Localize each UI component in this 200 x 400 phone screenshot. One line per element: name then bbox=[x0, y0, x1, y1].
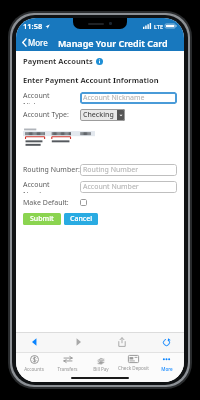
button[interactable]: Transfers bbox=[51, 352, 84, 374]
button[interactable]: Forward bbox=[70, 334, 86, 350]
button[interactable]: Submit bbox=[23, 213, 61, 225]
button[interactable]: Cancel bbox=[64, 213, 98, 225]
button[interactable]: Share bbox=[114, 334, 130, 350]
button[interactable]: Routing Number bbox=[80, 164, 177, 176]
staticText: Accounts bbox=[24, 366, 44, 372]
staticText: Submit bbox=[30, 214, 54, 224]
staticText: Routing Number bbox=[83, 165, 139, 175]
staticText: Bill Pay bbox=[93, 366, 109, 372]
button[interactable]: Check Deposit bbox=[117, 352, 150, 374]
staticText: Account Type: bbox=[23, 110, 80, 120]
staticText: LTE bbox=[154, 23, 163, 30]
button[interactable]: More bbox=[20, 36, 50, 49]
button[interactable]: Make Default checkbox bbox=[80, 199, 87, 206]
staticText: Enter Payment Account Information bbox=[23, 75, 159, 85]
button[interactable]: Back bbox=[26, 334, 42, 350]
button[interactable]: Reload bbox=[158, 334, 174, 350]
button[interactable]: Information bbox=[96, 58, 103, 65]
staticText: Account Nickname bbox=[83, 93, 145, 103]
staticText: Account Number bbox=[83, 182, 139, 192]
staticText: Routing Number: bbox=[23, 165, 80, 175]
button[interactable]: Account Nickname bbox=[80, 92, 177, 104]
staticText: More bbox=[161, 366, 173, 372]
staticText: Cancel bbox=[70, 214, 93, 224]
button[interactable]: More bbox=[150, 352, 183, 374]
button[interactable]: Bill Pay bbox=[84, 352, 117, 374]
staticText: Payment Accounts bbox=[23, 56, 93, 66]
staticText: Make Default: bbox=[23, 198, 80, 208]
staticText: More bbox=[28, 37, 48, 48]
staticText: Manage Your Credit Card bbox=[58, 37, 168, 49]
staticText: Account Number: bbox=[23, 180, 80, 193]
staticText: Checking bbox=[83, 110, 114, 120]
staticText: Transfers bbox=[57, 366, 78, 372]
staticText: 11:58 bbox=[23, 21, 43, 31]
button[interactable]: Account Number bbox=[80, 181, 177, 193]
staticText: Check Deposit bbox=[118, 365, 149, 371]
button[interactable]: Checking bbox=[80, 109, 125, 121]
button[interactable]: Accounts bbox=[17, 352, 51, 374]
staticText: Account Nickname: bbox=[23, 91, 80, 104]
